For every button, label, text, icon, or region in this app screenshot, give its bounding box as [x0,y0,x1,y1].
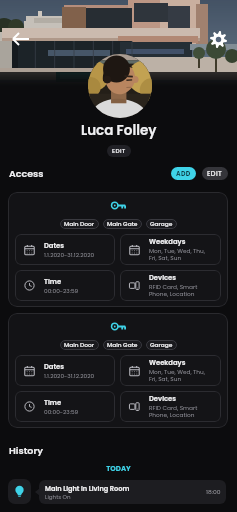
staticText: Dates [44,241,65,251]
staticText: Garage [150,220,173,228]
button[interactable]: Time [15,391,115,422]
staticText: RFID Card, Smart Phone, Location [149,404,198,419]
button[interactable]: Main Gate [103,219,142,229]
staticText: Devices [149,273,177,283]
button[interactable]: Devices [120,391,221,422]
staticText: Time [44,398,62,408]
staticText: Luca Folley [81,121,157,140]
button[interactable]: Devices [120,270,221,301]
button[interactable]: Main Door [8,313,228,428]
staticText: Access [9,167,44,180]
staticText: Main Gate [107,220,138,228]
button[interactable]: Weekdays [120,355,221,386]
staticText: Mon, Tue, Wed, Thu, Fri, Sat, Sun [149,368,205,383]
staticText: 1.1.2020-31.12.2020 [44,251,95,259]
staticText: Main Gate [107,341,138,349]
staticText: 1.1.2020-31.12.2020 [44,372,95,380]
button[interactable]: Garage [146,340,177,350]
staticText: TODAY [0,464,237,474]
button[interactable]: Garage [146,219,177,229]
button[interactable]: Weekdays [120,234,221,265]
button[interactable]: Main Light in Living Room [39,480,226,504]
button[interactable]: Dates [15,234,115,265]
staticText: EDIT [112,147,126,155]
staticText: ADD [176,169,191,178]
button[interactable]: Settings [205,26,231,52]
staticText: 18:00 [206,488,221,496]
button[interactable]: EDIT [107,145,131,157]
button[interactable]: Profile photo [88,54,152,118]
button[interactable]: Back [8,26,34,52]
staticText: History [9,444,43,457]
staticText: 00:00-23:59 [44,408,79,416]
staticText: EDIT [207,169,223,178]
staticText: Weekdays [149,358,186,368]
staticText: Lights On [45,493,71,501]
staticText: Main Door [64,341,95,349]
button[interactable]: Main Door [60,219,99,229]
button[interactable]: Time [15,270,115,301]
staticText: Dates [44,362,65,372]
staticText: RFID Card, Smart Phone, Location [149,283,198,298]
staticText: Weekdays [149,237,186,247]
button[interactable]: Light device [8,479,31,504]
staticText: Mon, Tue, Wed, Thu, Fri, Sat, Sun [149,247,205,262]
button[interactable]: Main Door [60,340,99,350]
staticText: 00:00-23:59 [44,287,79,295]
staticText: Garage [150,341,173,349]
staticText: Main Door [64,220,95,228]
button[interactable]: Main Gate [103,340,142,350]
button[interactable]: Main Door [8,192,228,307]
staticText: Main Light in Living Room [45,484,130,493]
button[interactable]: ADD [171,167,196,180]
button[interactable]: Dates [15,355,115,386]
staticText: Time [44,277,62,287]
staticText: Devices [149,394,177,404]
button[interactable]: EDIT [202,167,228,180]
